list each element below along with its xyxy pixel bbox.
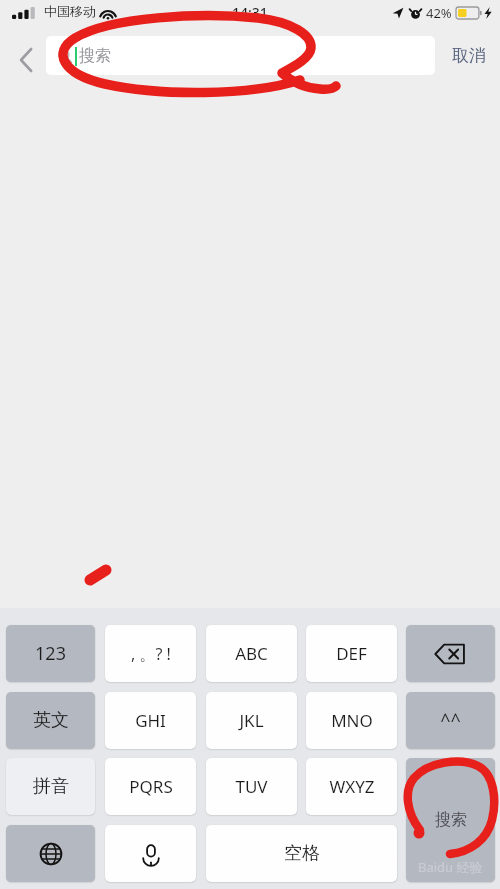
button[interactable]: , 。? ! [105, 625, 196, 682]
staticText: GHI [135, 709, 166, 732]
button[interactable]: Back [8, 42, 44, 78]
staticText: JKL [239, 709, 264, 732]
staticText: PQRS [129, 775, 173, 798]
button[interactable]: JKL [206, 692, 297, 749]
staticText: ^^ [440, 708, 461, 733]
button[interactable]: MNO [306, 692, 397, 749]
button[interactable]: Keyboard language [6, 825, 95, 882]
staticText: DEF [336, 642, 367, 665]
staticText: 空格 [284, 842, 320, 865]
button[interactable]: 搜索 [46, 36, 435, 75]
staticText: 中国移动 [44, 3, 96, 19]
staticText: 123 [35, 641, 66, 666]
button[interactable]: TUV [206, 758, 297, 815]
staticText: WXYZ [329, 775, 375, 798]
button[interactable]: DEF [306, 625, 397, 682]
staticText: 拼音 [33, 775, 69, 798]
staticText: 英文 [33, 709, 69, 732]
button[interactable]: PQRS [105, 758, 196, 815]
staticText: , 。? ! [131, 643, 171, 665]
button[interactable]: ABC [206, 625, 297, 682]
button[interactable]: Voice input [105, 825, 196, 882]
button[interactable]: 空格 [206, 825, 397, 882]
button[interactable]: 123 [6, 625, 95, 682]
button[interactable]: 英文 [6, 692, 95, 749]
button[interactable]: Backspace [406, 625, 495, 682]
button[interactable]: GHI [105, 692, 196, 749]
staticText: 42% [426, 4, 452, 22]
staticText: 取消 [452, 45, 486, 66]
button[interactable]: ^^ [406, 692, 495, 749]
staticText: MNO [331, 709, 373, 732]
button[interactable]: 取消 [440, 36, 498, 75]
staticText: ABC [235, 642, 268, 665]
button[interactable]: WXYZ [306, 758, 397, 815]
staticText: 搜索 [435, 810, 467, 830]
staticText: TUV [235, 775, 268, 798]
button[interactable]: 搜索 [406, 758, 495, 882]
staticText: 搜索 [79, 46, 111, 66]
button[interactable]: 拼音 [6, 758, 95, 815]
staticText: Baidu 经验 [418, 858, 483, 876]
staticText: 14:31 [232, 3, 268, 22]
